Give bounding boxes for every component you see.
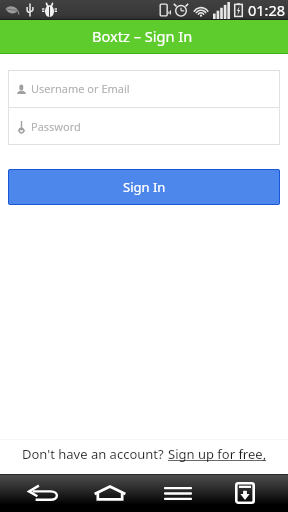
staticText: Boxtz – Sign In xyxy=(92,26,193,46)
button[interactable]: Recent apps xyxy=(154,474,202,512)
button[interactable]: Sign up for free, xyxy=(168,445,267,463)
button[interactable]: Sign In xyxy=(8,169,280,205)
button[interactable]: Back xyxy=(20,474,68,512)
button[interactable]: Username or Email xyxy=(8,70,280,107)
staticText: 01:28 xyxy=(248,0,286,20)
staticText: Username or Email xyxy=(31,81,130,96)
button[interactable]: Home xyxy=(86,474,134,512)
staticText: Sign In xyxy=(123,178,166,196)
button[interactable]: Hide keyboard xyxy=(221,474,269,512)
staticText: Sign up for free, xyxy=(168,445,267,463)
button[interactable]: Password xyxy=(8,108,280,145)
staticText: Password xyxy=(31,119,81,134)
staticText: Don't have an account? xyxy=(22,445,168,463)
